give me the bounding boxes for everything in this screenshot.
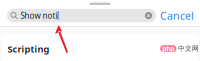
button[interactable]: Clear text [145, 12, 156, 19]
staticText: 中文网 [178, 44, 199, 53]
staticText: php [162, 44, 174, 53]
staticText: Scripting [8, 43, 50, 55]
staticText: Show noti [20, 10, 57, 21]
button[interactable]: Cancel [159, 9, 195, 22]
button[interactable]: Scripting [2, 34, 198, 60]
staticText: Cancel [160, 8, 194, 23]
